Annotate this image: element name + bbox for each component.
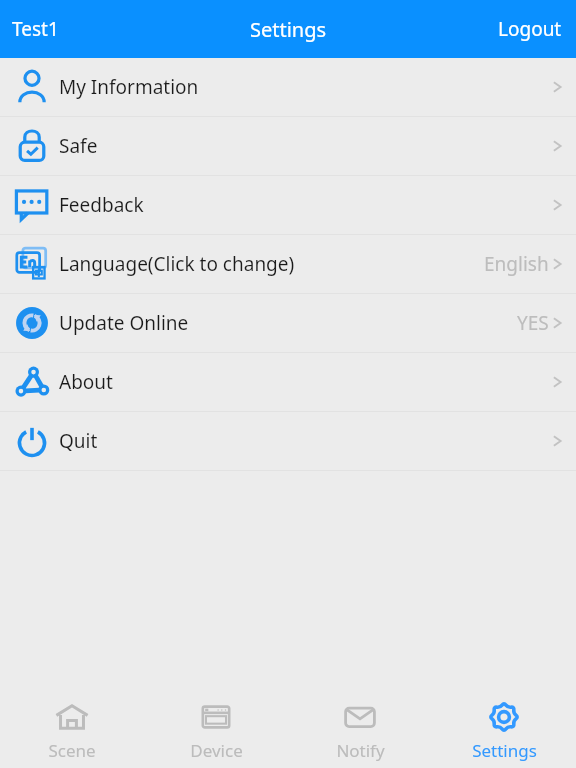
staticText: Scene	[48, 739, 96, 762]
staticText: Settings	[472, 739, 537, 762]
staticText: Language(Click to change)	[59, 251, 295, 277]
staticText: My Information	[59, 74, 199, 100]
staticText: Settings	[250, 16, 327, 43]
button[interactable]: Feedback	[0, 176, 576, 235]
button[interactable]: Device	[144, 691, 288, 768]
staticText: English	[484, 251, 549, 277]
button[interactable]: Quit	[0, 412, 576, 471]
staticText: Test1	[12, 16, 59, 42]
button[interactable]: Test1	[0, 8, 71, 50]
staticText: Feedback	[59, 192, 144, 218]
staticText: Safe	[59, 133, 98, 159]
button[interactable]: Update Online	[0, 294, 576, 353]
staticText: Device	[190, 739, 243, 762]
button[interactable]: My Information	[0, 58, 576, 117]
staticText: About	[59, 369, 113, 395]
button[interactable]: Language(Click to change)	[0, 235, 576, 294]
button[interactable]: Safe	[0, 117, 576, 176]
button[interactable]: Scene	[0, 691, 144, 768]
staticText: Quit	[59, 428, 98, 454]
button[interactable]: Settings	[432, 691, 576, 768]
staticText: Notify	[336, 739, 385, 762]
button[interactable]: Notify	[288, 691, 432, 768]
button[interactable]: About	[0, 353, 576, 412]
staticText: Update Online	[59, 310, 189, 336]
staticText: Logout	[498, 16, 562, 42]
button[interactable]: Logout	[484, 8, 576, 50]
staticText: YES	[517, 310, 549, 336]
